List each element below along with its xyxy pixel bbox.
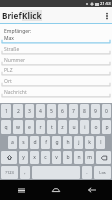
button[interactable]: g xyxy=(52,136,61,149)
button[interactable]: y xyxy=(19,151,28,164)
button[interactable]: ?123 xyxy=(1,166,18,179)
staticText: Max xyxy=(4,35,14,42)
button[interactable]: o xyxy=(91,120,100,134)
button[interactable]: z xyxy=(58,120,67,134)
staticText: d xyxy=(33,139,37,146)
staticText: x xyxy=(33,154,36,161)
button[interactable]: r xyxy=(36,120,45,134)
button[interactable]: Back xyxy=(77,180,107,200)
button[interactable]: Backspace xyxy=(96,151,111,164)
staticText: 8 xyxy=(83,108,86,115)
staticText: e xyxy=(28,124,31,131)
staticText: 4 xyxy=(39,108,42,115)
button[interactable]: 7 xyxy=(69,104,78,118)
button[interactable]: 8 xyxy=(80,104,89,118)
button[interactable]: 4 xyxy=(36,104,45,118)
staticText: Straße xyxy=(4,46,20,53)
button[interactable]: Home xyxy=(41,180,71,200)
staticText: z xyxy=(61,124,64,131)
staticText: w xyxy=(16,124,20,131)
staticText: s xyxy=(22,139,25,146)
button[interactable]: Nummer xyxy=(0,55,112,66)
button[interactable]: 9 xyxy=(91,104,100,118)
button[interactable]: Nachricht xyxy=(0,87,112,98)
staticText: y xyxy=(22,154,25,161)
staticText: . xyxy=(86,169,88,176)
button[interactable]: m xyxy=(85,151,94,164)
button[interactable]: h xyxy=(63,136,72,149)
button[interactable]: 3 xyxy=(25,104,34,118)
button[interactable]: x xyxy=(30,151,39,164)
button[interactable]: f xyxy=(41,136,50,149)
button[interactable]: Los xyxy=(94,166,111,179)
staticText: 7 xyxy=(72,108,75,115)
staticText: Los xyxy=(99,170,106,175)
staticText: v xyxy=(55,154,58,161)
staticText: PLZ xyxy=(4,67,13,74)
button[interactable]: PLZ xyxy=(0,65,112,76)
staticText: m xyxy=(87,154,92,161)
staticText: j xyxy=(78,139,80,146)
staticText: Empfänger: xyxy=(4,28,32,35)
button[interactable]: Shift xyxy=(1,151,17,164)
staticText: i xyxy=(84,124,86,131)
staticText: k xyxy=(88,139,91,146)
button[interactable]: Recent apps xyxy=(6,180,36,200)
staticText: t xyxy=(51,124,53,131)
button[interactable]: a xyxy=(8,136,17,149)
button[interactable]: Max xyxy=(0,33,112,44)
staticText: n xyxy=(77,154,81,161)
button[interactable]: 6 xyxy=(58,104,67,118)
staticText: 2 xyxy=(17,108,20,115)
button[interactable]: p xyxy=(102,120,111,134)
staticText: Nummer xyxy=(4,57,26,64)
button[interactable]: l xyxy=(96,136,105,149)
staticText: q xyxy=(4,124,8,131)
button[interactable]: c xyxy=(41,151,50,164)
staticText: Klick xyxy=(22,10,42,21)
button[interactable]: e xyxy=(25,120,34,134)
staticText: b xyxy=(66,154,70,161)
staticText: Nachricht xyxy=(4,89,27,96)
button[interactable]: n xyxy=(74,151,83,164)
staticText: o xyxy=(94,124,98,131)
button[interactable]: 2 xyxy=(13,104,23,118)
staticText: g xyxy=(55,139,59,146)
button[interactable]: v xyxy=(52,151,61,164)
staticText: l xyxy=(100,139,102,146)
button[interactable]: q xyxy=(1,120,11,134)
button[interactable]: Ort xyxy=(0,76,112,87)
button[interactable]: w xyxy=(13,120,23,134)
staticText: , xyxy=(24,169,26,176)
button[interactable]: u xyxy=(69,120,78,134)
button[interactable]: 0 xyxy=(102,104,111,118)
button[interactable]: More options xyxy=(101,7,112,24)
staticText: a xyxy=(11,139,14,146)
staticText: ?123 xyxy=(5,170,14,175)
staticText: 1 xyxy=(5,108,8,115)
staticText: 0 xyxy=(105,108,108,115)
button[interactable]: j xyxy=(74,136,83,149)
button[interactable]: i xyxy=(80,120,89,134)
staticText: 9 xyxy=(94,108,97,115)
staticText: Ort xyxy=(4,78,12,85)
button[interactable]: 5 xyxy=(47,104,56,118)
staticText: 21:53 xyxy=(100,1,111,7)
button[interactable]: . xyxy=(82,166,92,179)
staticText: 3 xyxy=(28,108,31,115)
staticText: 5 xyxy=(50,108,53,115)
button[interactable]: k xyxy=(85,136,94,149)
button[interactable]: , xyxy=(20,166,30,179)
button[interactable]: Straße xyxy=(0,44,112,55)
staticText: p xyxy=(105,124,109,131)
button[interactable]: b xyxy=(63,151,72,164)
button[interactable]: s xyxy=(19,136,28,149)
staticText: r xyxy=(39,124,42,131)
staticText: u xyxy=(72,124,76,131)
button[interactable]: 1 xyxy=(1,104,11,118)
button[interactable]: t xyxy=(47,120,56,134)
staticText: c xyxy=(44,154,47,161)
staticText: f xyxy=(45,139,47,146)
button[interactable]: d xyxy=(30,136,39,149)
